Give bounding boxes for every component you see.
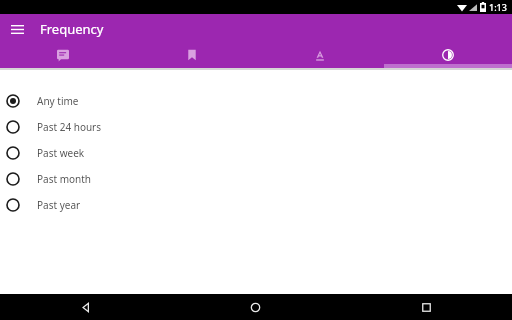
button[interactable]: Past month: [0, 166, 512, 192]
button[interactable]: Past year: [0, 192, 512, 218]
button[interactable]: Recent apps: [341, 294, 512, 320]
button[interactable]: Messages: [0, 44, 128, 68]
staticText: Past 24 hours: [37, 120, 102, 134]
staticText: Past year: [37, 198, 81, 212]
staticText: 1:13: [489, 1, 507, 13]
button[interactable]: Open navigation drawer: [4, 16, 30, 42]
staticText: Past month: [37, 172, 92, 186]
button[interactable]: Past 24 hours: [0, 114, 512, 140]
button[interactable]: Text format: [256, 44, 384, 68]
button[interactable]: Bookmarks: [128, 44, 256, 68]
staticText: Past week: [37, 146, 85, 160]
button[interactable]: Back: [0, 294, 170, 320]
button[interactable]: Home: [170, 294, 341, 320]
button[interactable]: Past week: [0, 140, 512, 166]
staticText: Frequency: [40, 20, 104, 38]
staticText: Any time: [37, 94, 79, 108]
button[interactable]: Frequency: [384, 44, 512, 68]
button[interactable]: Any time: [0, 88, 512, 114]
